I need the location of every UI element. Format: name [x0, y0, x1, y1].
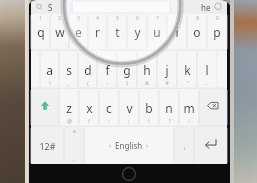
staticText: @	[67, 118, 72, 125]
button[interactable]: 1	[31, 14, 50, 50]
staticText: f	[105, 62, 110, 78]
button[interactable]: ‹	[84, 127, 174, 164]
button[interactable]: S	[31, 0, 227, 14]
staticText: e	[75, 24, 82, 40]
button[interactable]: 8	[167, 14, 187, 50]
staticText: b	[145, 100, 153, 116]
staticText: l	[205, 62, 209, 78]
button[interactable]: h	[137, 51, 157, 88]
staticText: he	[201, 2, 211, 13]
button[interactable]: ,	[174, 127, 194, 164]
button[interactable]: d	[78, 51, 97, 88]
button[interactable]: s	[59, 51, 78, 88]
staticText: d	[84, 62, 92, 78]
staticText: (	[87, 80, 89, 87]
button[interactable]: a	[40, 51, 59, 88]
staticText: _	[67, 80, 70, 87]
staticText: 3	[77, 15, 80, 22]
button[interactable]: 3	[69, 14, 88, 50]
button[interactable]: c	[99, 89, 119, 126]
staticText: t	[115, 24, 120, 40]
button[interactable]: 0	[207, 14, 227, 50]
staticText: 9	[196, 15, 199, 22]
staticText: m	[183, 100, 195, 116]
staticText: x	[86, 100, 93, 116]
staticText: English	[115, 140, 143, 151]
staticText: 8	[176, 15, 179, 22]
staticText: 6	[136, 15, 139, 22]
staticText: s	[66, 62, 72, 78]
staticText: ;	[128, 118, 130, 125]
staticText: 4	[96, 15, 99, 22]
staticText: ,	[73, 156, 75, 163]
staticText: k	[184, 62, 191, 78]
button[interactable]: b	[139, 89, 159, 126]
button[interactable]: l	[197, 51, 217, 88]
staticText: n	[165, 100, 173, 116]
button[interactable]: 5	[107, 14, 127, 50]
staticText: y	[134, 24, 141, 40]
staticText: 2	[58, 15, 61, 22]
button[interactable]: 12#	[31, 127, 64, 164]
button[interactable]: j	[157, 51, 177, 88]
staticText: )	[126, 80, 128, 87]
other: Home	[121, 166, 137, 182]
staticText: \	[49, 80, 51, 87]
staticText: ~	[188, 118, 191, 125]
staticText: 12#	[39, 140, 56, 152]
staticText: .	[206, 80, 208, 87]
button[interactable]: Enter	[194, 127, 227, 164]
staticText: a	[46, 62, 53, 78]
staticText: q	[37, 24, 45, 40]
staticText: "	[186, 80, 189, 87]
staticText: 7	[156, 15, 159, 22]
staticText: g	[123, 62, 131, 78]
staticText: -	[106, 80, 108, 87]
button[interactable]: 9	[187, 14, 207, 50]
staticText: ?	[168, 118, 171, 125]
staticText: #	[165, 80, 169, 87]
button[interactable]: g	[117, 51, 137, 88]
button[interactable]: 2	[50, 14, 69, 50]
staticText: w	[55, 24, 65, 40]
button[interactable]: z	[59, 89, 79, 126]
staticText: i	[175, 24, 179, 40]
staticText: o	[193, 24, 201, 40]
button[interactable]: 7	[147, 14, 167, 50]
staticText: :	[108, 118, 110, 125]
staticText: j	[165, 62, 169, 78]
button[interactable]: m	[179, 89, 199, 126]
staticText: &	[145, 80, 149, 87]
button[interactable]: Shift	[31, 89, 59, 126]
staticText: S	[48, 2, 53, 13]
staticText: p	[213, 24, 221, 40]
button[interactable]: a	[64, 127, 84, 164]
staticText: 5	[116, 15, 119, 22]
button[interactable]: n	[159, 89, 179, 126]
staticText: ,	[183, 140, 186, 151]
staticText: r	[95, 24, 100, 40]
staticText: 0	[216, 15, 219, 22]
staticText: ›	[146, 141, 149, 151]
button[interactable]: Backspace	[199, 89, 227, 126]
button[interactable]: k	[177, 51, 197, 88]
button[interactable]: f	[97, 51, 117, 88]
staticText: ‹	[109, 141, 112, 151]
button[interactable]: x	[79, 89, 99, 126]
staticText: h	[143, 62, 151, 78]
staticText: !	[148, 118, 150, 125]
button[interactable]: v	[119, 89, 139, 126]
staticText: u	[153, 24, 161, 40]
staticText: a	[73, 128, 76, 135]
staticText: c	[106, 100, 112, 116]
button[interactable]: 6	[127, 14, 147, 50]
staticText: /	[88, 118, 90, 125]
staticText: v	[126, 100, 133, 116]
staticText: 1	[39, 15, 42, 22]
staticText: z	[66, 100, 72, 116]
button[interactable]: 4	[88, 14, 107, 50]
